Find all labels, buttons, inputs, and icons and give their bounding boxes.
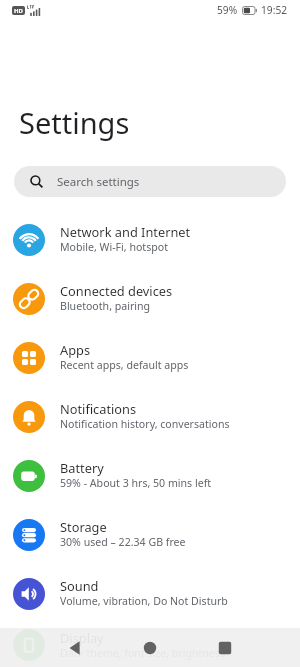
staticText: Notification history, conversations	[60, 417, 230, 431]
staticText: Notifications	[60, 400, 137, 417]
staticText: Recent apps, default apps	[60, 358, 189, 372]
button[interactable]: Battery	[0, 446, 300, 505]
staticText: 19:52	[261, 3, 288, 17]
button[interactable]: Search settings	[14, 166, 286, 197]
staticText: Storage	[60, 518, 107, 535]
staticText: Dark theme, font size, brightness	[60, 646, 225, 660]
staticText: Battery	[60, 459, 104, 476]
button[interactable]: Apps	[0, 328, 300, 387]
staticText: HD	[14, 7, 23, 15]
staticText: Bluetooth, pairing	[60, 299, 151, 313]
button[interactable]: Network and Internet	[0, 210, 300, 269]
staticText: Sound	[60, 577, 99, 594]
button[interactable]	[201, 628, 249, 667]
staticText: Settings	[19, 103, 130, 142]
staticText: 59%	[217, 3, 238, 17]
button[interactable]: Storage	[0, 505, 300, 564]
staticText: Display	[60, 629, 104, 646]
button[interactable]: Display	[0, 623, 300, 667]
staticText: 59% - About 3 hrs, 50 mins left	[60, 476, 212, 490]
staticText: Search settings	[57, 174, 140, 190]
staticText: Network and Internet	[60, 223, 191, 240]
button[interactable]: Sound	[0, 564, 300, 623]
button[interactable]	[51, 628, 99, 667]
staticText: Connected devices	[60, 282, 173, 299]
staticText: Volume, vibration, Do Not Disturb	[60, 594, 228, 608]
button[interactable]: Notifications	[0, 387, 300, 446]
staticText: Mobile, Wi-Fi, hotspot	[60, 240, 168, 254]
staticText: Apps	[60, 341, 91, 358]
button[interactable]	[126, 628, 174, 667]
staticText: 30% used – 22.34 GB free	[60, 535, 186, 549]
button[interactable]: Connected devices	[0, 269, 300, 328]
